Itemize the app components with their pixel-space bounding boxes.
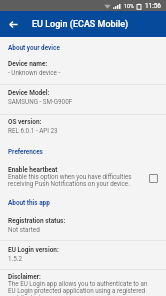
staticText: Enable this option when you have difficu… [8, 173, 142, 187]
staticText: REL 6.0.1 - API 23 [8, 127, 58, 134]
staticText: The EU Login app allows you to authentic… [8, 280, 152, 296]
staticText: Device name: [8, 60, 48, 68]
staticText: Device Model: [8, 89, 50, 97]
staticText: EU Login version: [8, 246, 59, 254]
button[interactable]: Device Model: [0, 89, 166, 111]
staticText: Not started [8, 226, 40, 233]
button[interactable]: Enable heartbeat [0, 166, 166, 194]
staticText: About this app [8, 199, 50, 207]
staticText: Enable heartbeat [8, 166, 58, 174]
staticText: 11:56 [145, 2, 161, 10]
staticText: Preferences [8, 148, 43, 156]
staticText: OS version: [8, 118, 42, 126]
staticText: 1.5.2 [8, 255, 22, 262]
staticText: About your device [8, 44, 60, 52]
button[interactable]: OS version: [0, 118, 166, 140]
staticText: Registration status: [8, 217, 66, 225]
staticText: - Unknown device - [8, 69, 61, 76]
staticText: 10% [124, 3, 135, 9]
staticText: Disclaimer: [8, 273, 41, 281]
staticText: SAMSUNG - SM-G900F [8, 98, 73, 105]
button[interactable]: Registration status: [0, 217, 166, 239]
button[interactable]: Back [0, 12, 24, 36]
button[interactable]: Device name: [0, 60, 166, 82]
staticText: EU Login (ECAS Mobile) [32, 19, 129, 30]
button[interactable]: EU Login version: [0, 246, 166, 268]
